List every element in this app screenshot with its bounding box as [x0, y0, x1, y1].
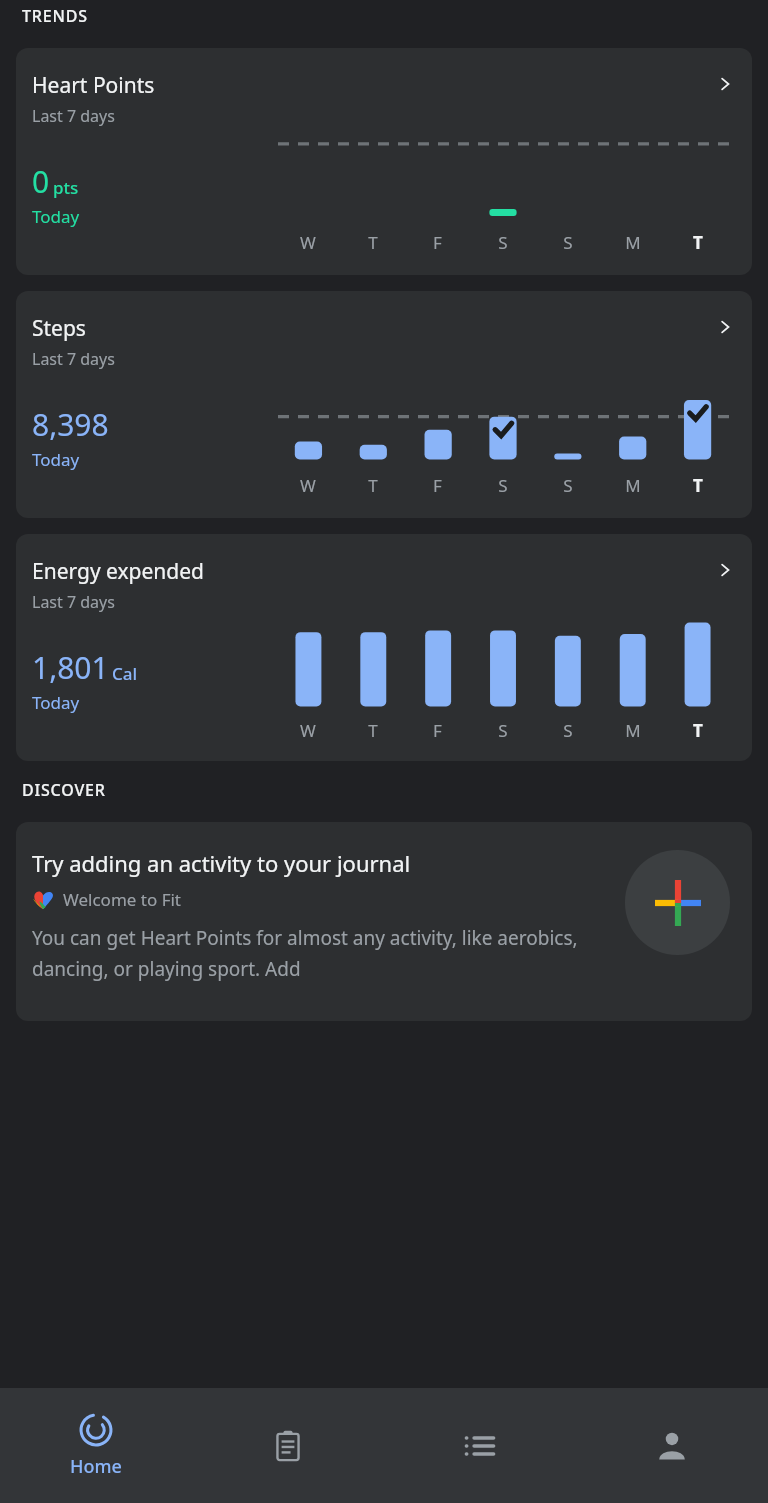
staticText: F	[433, 474, 442, 497]
staticText: F	[433, 719, 442, 742]
button[interactable]: Steps	[16, 291, 752, 518]
staticText: S	[563, 474, 573, 497]
button[interactable]: Heart Points	[16, 48, 752, 275]
staticText: T	[693, 231, 703, 254]
staticText: W	[300, 719, 316, 742]
staticText: Energy expended	[32, 557, 204, 586]
staticText: T	[693, 474, 703, 497]
staticText: Today	[32, 448, 80, 471]
button[interactable]: Journal	[192, 1388, 384, 1503]
button[interactable]: Home	[0, 1388, 192, 1503]
staticText: S	[498, 231, 508, 254]
staticText: 0	[32, 161, 50, 202]
staticText: Steps	[32, 314, 86, 343]
button[interactable]: Profile	[576, 1388, 768, 1503]
button[interactable]: Open Energy expended details	[712, 557, 738, 583]
button[interactable]: Try adding an activity to your journal	[16, 822, 752, 1021]
staticText: pts	[53, 176, 79, 199]
staticText: M	[625, 719, 641, 742]
staticText: T	[693, 719, 703, 742]
staticText: T	[368, 719, 378, 742]
staticText: S	[563, 231, 573, 254]
staticText: W	[300, 474, 316, 497]
staticText: Today	[32, 205, 80, 228]
button[interactable]: Add activity	[625, 850, 730, 955]
button[interactable]: Open Heart Points details	[712, 71, 738, 97]
staticText: Heart Points	[32, 71, 155, 100]
staticText: You can get Heart Points for almost any …	[32, 925, 615, 981]
staticText: S	[498, 474, 508, 497]
staticText: Cal	[112, 662, 138, 685]
button[interactable]: Open Steps details	[712, 314, 738, 340]
button[interactable]: Browse	[384, 1388, 576, 1503]
staticText: Last 7 days	[32, 348, 115, 370]
staticText: M	[625, 474, 641, 497]
staticText: S	[563, 719, 573, 742]
staticText: S	[498, 719, 508, 742]
staticText: T	[368, 231, 378, 254]
staticText: W	[300, 231, 316, 254]
staticText: TRENDS	[22, 5, 88, 27]
staticText: Try adding an activity to your journal	[32, 848, 411, 878]
button[interactable]: Energy expended	[16, 534, 752, 761]
staticText: 8,398	[32, 404, 109, 445]
staticText: Today	[32, 691, 80, 714]
staticText: F	[433, 231, 442, 254]
staticText: M	[625, 231, 641, 254]
staticText: Last 7 days	[32, 105, 115, 127]
staticText: Last 7 days	[32, 591, 115, 613]
staticText: Home	[70, 1454, 122, 1479]
staticText: 1,801	[32, 647, 109, 688]
staticText: Welcome to Fit	[63, 888, 181, 911]
staticText: DISCOVER	[22, 779, 106, 801]
staticText: T	[368, 474, 378, 497]
